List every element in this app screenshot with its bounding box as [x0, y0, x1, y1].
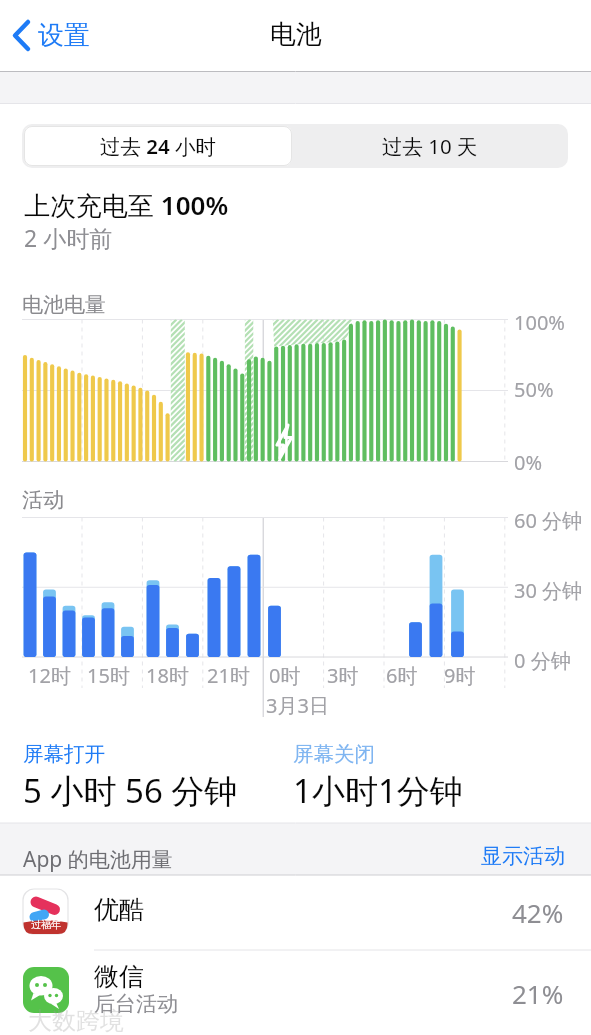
button[interactable] — [0, 950, 591, 1035]
staticText: 0时 — [269, 662, 301, 689]
staticText: App 的电池用量 — [23, 845, 173, 874]
staticText: 42% — [512, 895, 564, 930]
staticText: 1小时1分钟 — [293, 768, 463, 813]
staticText: 100% — [514, 309, 565, 336]
staticText: 电池电量 — [22, 292, 106, 318]
staticText: 50% — [514, 376, 554, 403]
staticText: 优酷 — [94, 894, 144, 925]
staticText: 21% — [512, 976, 564, 1011]
staticText: 18时 — [146, 662, 189, 689]
staticText: 过去 10 天 — [382, 132, 478, 160]
staticText: 15时 — [87, 662, 130, 689]
staticText: 活动 — [22, 487, 64, 513]
staticText: 21时 — [207, 662, 250, 689]
staticText: 0 分钟 — [514, 647, 571, 674]
staticText: 过福年 — [31, 918, 61, 931]
staticText: 设置 — [38, 19, 90, 52]
button[interactable]: 过去 24 小时 — [24, 126, 292, 166]
staticText: 3时 — [327, 662, 359, 689]
staticText: 6时 — [386, 662, 418, 689]
staticText: 屏幕关闭 — [293, 741, 375, 767]
staticText: 0% — [514, 449, 543, 476]
staticText: 过去 24 小时 — [100, 132, 217, 160]
staticText: 大数跨境 — [28, 1006, 124, 1035]
staticText: 30 分钟 — [514, 577, 583, 604]
staticText: 显示活动 — [481, 843, 565, 869]
staticText: 屏幕打开 — [23, 741, 105, 767]
staticText: 后台活动 — [94, 991, 178, 1017]
staticText: 微信 — [94, 961, 144, 992]
staticText: 电池 — [270, 18, 322, 51]
staticText: 上次充电至 100% — [24, 187, 229, 223]
staticText: 9时 — [444, 662, 476, 689]
staticText: 3月3日 — [266, 692, 329, 719]
button[interactable]: 过去 10 天 — [294, 126, 566, 166]
staticText: 2 小时前 — [24, 222, 113, 253]
button[interactable] — [8, 14, 118, 58]
staticText: 12时 — [28, 662, 71, 689]
staticText: 5 小时 56 分钟 — [23, 768, 238, 813]
button[interactable] — [0, 876, 591, 950]
staticText: 60 分钟 — [514, 507, 583, 534]
button[interactable]: 显示活动 — [420, 843, 565, 873]
